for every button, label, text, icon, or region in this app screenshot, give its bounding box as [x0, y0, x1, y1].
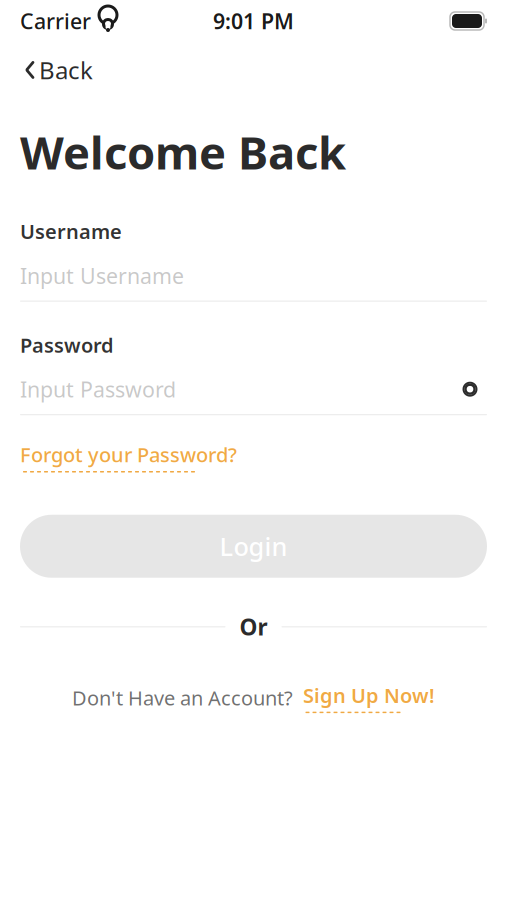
staticText: Username	[20, 218, 122, 245]
staticText: Input Username	[20, 261, 184, 290]
button[interactable]: Login	[20, 515, 487, 578]
staticText: 9:01 PM	[213, 7, 294, 35]
staticText: Or	[239, 612, 267, 642]
button[interactable]: Sign Up Now!	[303, 682, 435, 713]
button[interactable]: Forgot your Password?	[20, 441, 237, 473]
staticText: Password	[20, 332, 114, 358]
staticText: Don't Have an Account?	[72, 684, 293, 711]
staticText: Welcome Back	[20, 122, 346, 182]
staticText: Sign Up Now!	[303, 682, 435, 708]
staticText: Login	[219, 529, 287, 563]
button[interactable]: Back	[20, 46, 97, 94]
button[interactable]: Show password	[453, 377, 487, 401]
staticText: Forgot your Password?	[20, 441, 237, 468]
staticText: Input Password	[20, 375, 176, 403]
staticText: Back	[39, 54, 93, 86]
staticText: Carrier	[20, 7, 91, 35]
